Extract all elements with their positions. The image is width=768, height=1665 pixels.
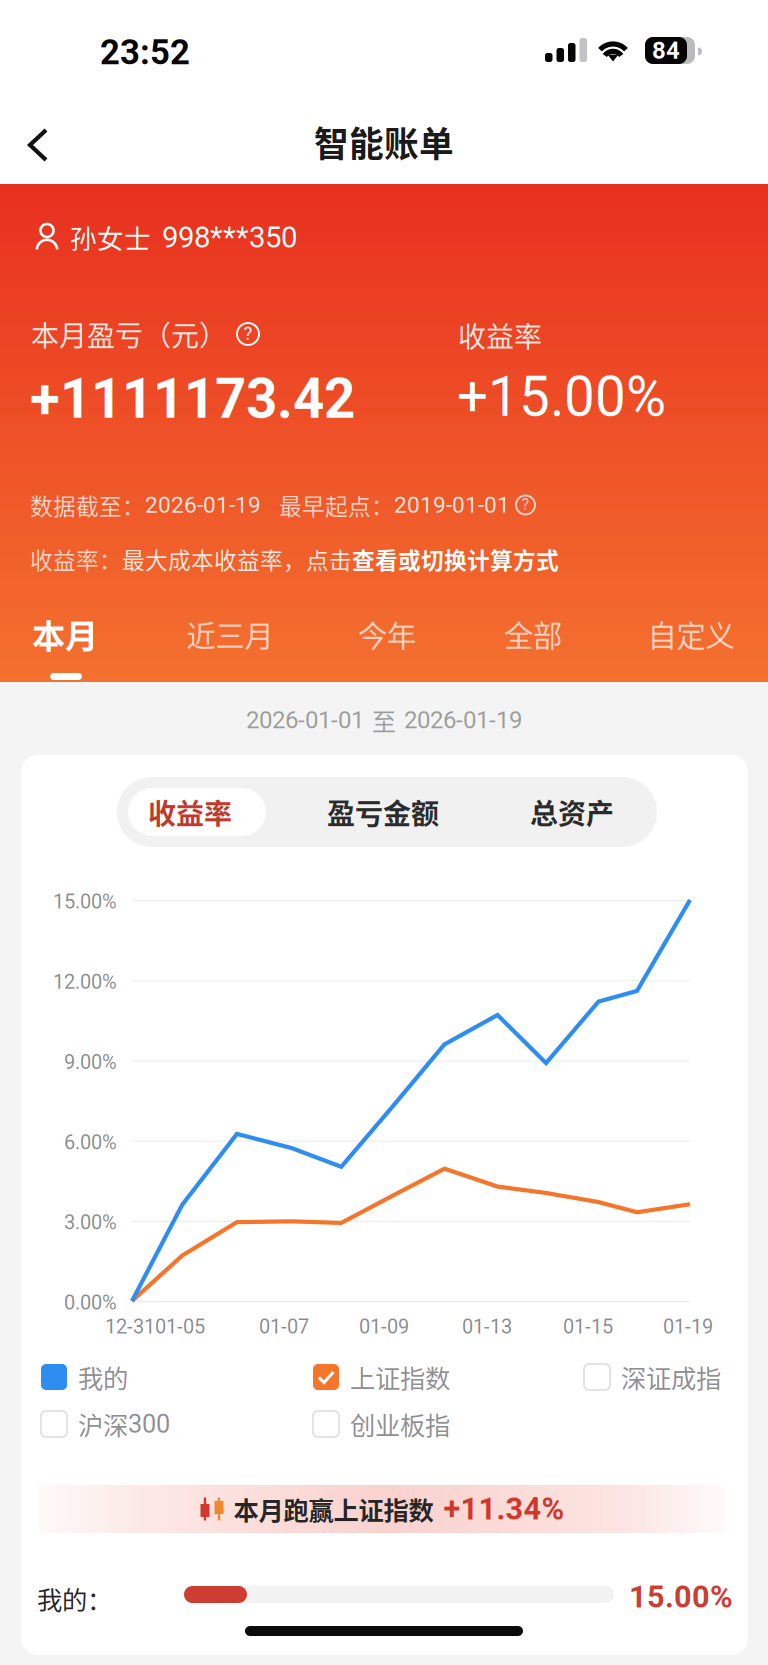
staticText: 23:52 (100, 32, 190, 73)
staticText: 查看或切换计算方式 (352, 543, 559, 575)
staticText: 收益率 (148, 792, 232, 832)
staticText: 01-15 (563, 1315, 613, 1338)
staticText: 今年 (358, 613, 416, 655)
staticText: 深证成指 (621, 1359, 721, 1395)
staticText: 2026-01-19 (145, 492, 261, 518)
button[interactable]: 近三月 (155, 598, 305, 670)
button[interactable]: 上证指数 (313, 1362, 543, 1392)
staticText: 12-31 (105, 1315, 155, 1338)
button[interactable]: Back (0, 107, 76, 183)
staticText: 近三月 (186, 613, 273, 655)
button[interactable]: 盈亏金额 (303, 777, 463, 847)
staticText: 智能账单 (314, 117, 454, 167)
staticText: 01-09 (359, 1315, 409, 1338)
staticText: 我的： (37, 1580, 112, 1617)
staticText: 998***350 (162, 220, 297, 255)
staticText: +1111173.42 (30, 367, 355, 431)
staticText (510, 492, 516, 518)
staticText: ? (521, 495, 529, 514)
staticText: 15.00% (53, 890, 117, 913)
staticText: +11.34% (443, 1491, 564, 1527)
staticText: 9.00% (64, 1050, 117, 1074)
staticText: 数据截至： (30, 489, 145, 521)
staticText: 2019-01-01 (394, 492, 510, 518)
staticText: 上证指数 (350, 1359, 450, 1395)
button[interactable]: 全部 (458, 598, 608, 670)
staticText: 01-07 (259, 1315, 309, 1338)
button[interactable]: 收益率 (110, 777, 270, 847)
staticText: 12.00% (53, 970, 117, 994)
staticText: 300 (128, 1409, 170, 1439)
staticText: ? (243, 322, 252, 344)
staticText: 沪深 (78, 1406, 128, 1442)
button[interactable]: 创业板指 (313, 1409, 543, 1439)
button[interactable]: 今年 (312, 598, 462, 670)
staticText: 15.00% (629, 1579, 733, 1615)
staticText: 全部 (504, 613, 562, 655)
staticText: 01-13 (462, 1315, 512, 1338)
staticText: 至 (372, 703, 396, 737)
staticText: 01-05 (155, 1315, 205, 1338)
button[interactable]: 总资产 (492, 777, 652, 847)
button[interactable]: 自定义 (616, 598, 766, 670)
staticText: 本月盈亏（元） (31, 314, 227, 354)
staticText: 盈亏金额 (327, 792, 439, 832)
staticText: 收益率： (30, 543, 122, 575)
staticText: 收益率 (458, 315, 542, 355)
staticText: 最大成本收益率，点击 (122, 543, 352, 575)
staticText: 创业板指 (350, 1406, 450, 1442)
staticText: 2026-01-01 (246, 706, 364, 734)
button[interactable]: 本月 (0, 598, 140, 670)
staticText: 孙女士 (70, 218, 151, 256)
staticText: 6.00% (64, 1131, 117, 1154)
staticText: +15.00% (457, 365, 666, 429)
staticText: 01-19 (663, 1315, 713, 1338)
staticText: 本月跑赢上证指数 (233, 1491, 433, 1527)
staticText: 最早起点： (279, 489, 394, 521)
staticText: 0.00% (64, 1291, 117, 1314)
staticText: 3.00% (64, 1211, 117, 1234)
staticText: 本月 (32, 610, 98, 658)
staticText: 我的 (78, 1359, 128, 1395)
staticText: 84 (652, 36, 680, 64)
button[interactable]: 深证成指 (584, 1362, 768, 1392)
button[interactable]: 我的 (41, 1362, 271, 1392)
button[interactable]: 沪深 (41, 1409, 271, 1439)
staticText: 2026-01-19 (404, 706, 522, 734)
staticText: 总资产 (530, 792, 614, 832)
staticText: 自定义 (647, 613, 734, 655)
